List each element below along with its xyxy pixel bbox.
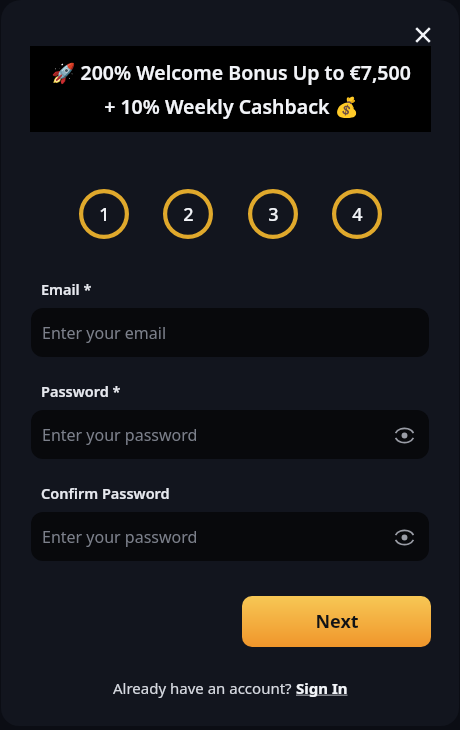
staticText: Confirm Password (41, 483, 170, 503)
button[interactable]: Enter your password (31, 512, 429, 561)
staticText: 1 (99, 202, 110, 227)
button[interactable]: Show password (391, 524, 417, 550)
staticText: 4 (352, 202, 363, 227)
button[interactable]: 2 (163, 189, 213, 239)
staticText: Enter your email (42, 322, 167, 344)
button[interactable]: Close (401, 13, 445, 57)
button[interactable]: 3 (248, 189, 298, 239)
staticText: Sign In (296, 678, 348, 698)
button[interactable]: Next (242, 596, 431, 647)
staticText: + 10% Weekly Cashback 💰 (104, 93, 359, 120)
button[interactable]: Enter your password (31, 410, 429, 459)
button[interactable]: 1 (79, 189, 129, 239)
staticText: 3 (268, 202, 279, 227)
staticText: Password * (41, 381, 121, 401)
button[interactable]: Show password (391, 422, 417, 448)
staticText: 2 (183, 202, 194, 227)
staticText: Enter your password (42, 526, 198, 548)
staticText: Already have an account? (113, 678, 296, 698)
button[interactable]: 4 (332, 189, 382, 239)
button[interactable]: Enter your email (31, 308, 429, 357)
staticText: 🚀 200% Welcome Bonus Up to €7,500 (51, 59, 411, 86)
button[interactable]: Sign In (296, 678, 348, 698)
staticText: Enter your password (42, 424, 198, 446)
staticText: Next (315, 609, 359, 634)
button[interactable]: 🚀 200% Welcome Bonus Up to €7,500 (30, 46, 431, 132)
staticText: Email * (41, 279, 92, 299)
